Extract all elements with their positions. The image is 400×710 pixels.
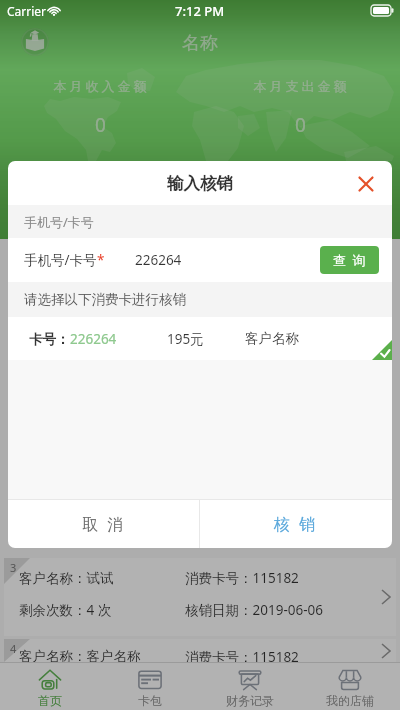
staticText: 财务记录 [226,693,274,708]
staticText: 手机号/卡号 [24,251,97,269]
staticText: * [97,251,105,269]
staticText: 本月支出金额 [252,78,348,94]
button[interactable]: 卡号： [8,317,392,360]
button[interactable]: Close [354,172,378,196]
staticText: 输入核销 [167,173,233,194]
staticText: 卡包 [138,693,162,708]
staticText: 0 [295,112,306,138]
staticText: 消费卡号：115182 [185,569,299,587]
staticText: 首页 [38,693,62,708]
button[interactable]: 查 询 [320,246,379,274]
staticText: 7:12 PM [175,2,225,20]
button[interactable]: 核 销 [200,500,392,548]
staticText: 195元 [167,330,204,348]
button[interactable]: 卡包 [100,663,200,710]
staticText: 核销日期：2019-06-06 [185,601,323,619]
button[interactable]: 取 消 [8,500,199,548]
staticText: 客户名称 [245,330,299,347]
staticText: 3 [10,560,17,575]
staticText: 226264 [70,330,117,348]
staticText: 卡号： [29,331,70,348]
staticText: 剩余次数：4 次 [19,601,185,619]
staticText: 取 消 [82,513,126,535]
button[interactable]: 4 [4,639,396,662]
staticText: 本月收入金额 [52,78,148,94]
button[interactable]: 我的店铺 [300,663,400,710]
staticText: 手机号/卡号 [24,213,94,231]
button[interactable]: 3 [4,558,396,636]
staticText: 客户名称：客户名称 [19,648,185,662]
staticText: 核 销 [274,513,318,535]
staticText: 226264 [135,251,182,269]
staticText: 名称 [182,32,218,55]
button[interactable]: Profile [21,28,49,56]
staticText: 4 [10,641,17,656]
button[interactable]: 财务记录 [200,663,300,710]
staticText: 我的店铺 [326,693,374,708]
staticText: 查 询 [333,251,367,269]
button[interactable]: 首页 [0,663,100,710]
staticText: 客户名称：试试 [19,570,185,587]
staticText: 0 [95,112,106,138]
staticText: 消费卡号：115182 [185,648,299,662]
staticText: Carrier [7,3,47,19]
staticText: 请选择以下消费卡进行核销 [24,291,186,308]
